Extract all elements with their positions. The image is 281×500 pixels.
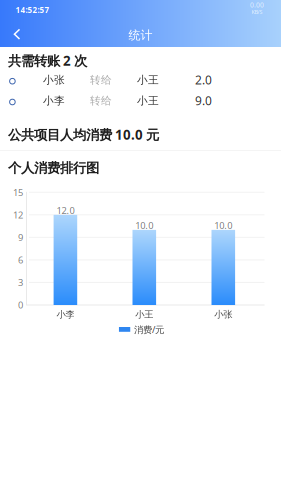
staticText: 小张 (214, 309, 232, 320)
staticText: 2.0 (195, 72, 212, 88)
button[interactable]: 小张 (0, 0, 281, 21)
staticText: 转给 (90, 94, 112, 107)
staticText: 12.0 (56, 204, 74, 217)
staticText: 0.00 (250, 0, 264, 9)
staticText: 6 (18, 254, 23, 266)
staticText: 15 (13, 186, 23, 198)
staticText: 共需转账 2 次 (8, 52, 87, 69)
staticText: 10.0 (135, 219, 153, 232)
staticText: 小张 (43, 73, 65, 86)
staticText: 小李 (56, 309, 74, 320)
staticText: 小王 (137, 73, 159, 86)
staticText: 公共项目人均消费 10.0 元 (8, 126, 159, 143)
staticText: 小王 (137, 94, 159, 107)
button[interactable]: 小李 (0, 0, 281, 21)
staticText: 个人消费排行图 (8, 160, 99, 176)
staticText: 14:52:57 (15, 4, 49, 15)
staticText: 3 (18, 276, 23, 289)
staticText: KB/S (251, 8, 262, 15)
staticText: 12 (13, 209, 23, 221)
button[interactable]: Back (2, 19, 32, 49)
staticText: 9.0 (195, 93, 212, 109)
staticText: 统计 (128, 28, 152, 43)
staticText: 小王 (135, 309, 153, 320)
staticText: 9 (18, 231, 23, 244)
staticText: 转给 (90, 73, 112, 86)
staticText: 小李 (43, 94, 65, 107)
staticText: 10.0 (214, 219, 232, 232)
staticText: 消费/元 (134, 323, 164, 336)
staticText: 0 (18, 299, 23, 311)
